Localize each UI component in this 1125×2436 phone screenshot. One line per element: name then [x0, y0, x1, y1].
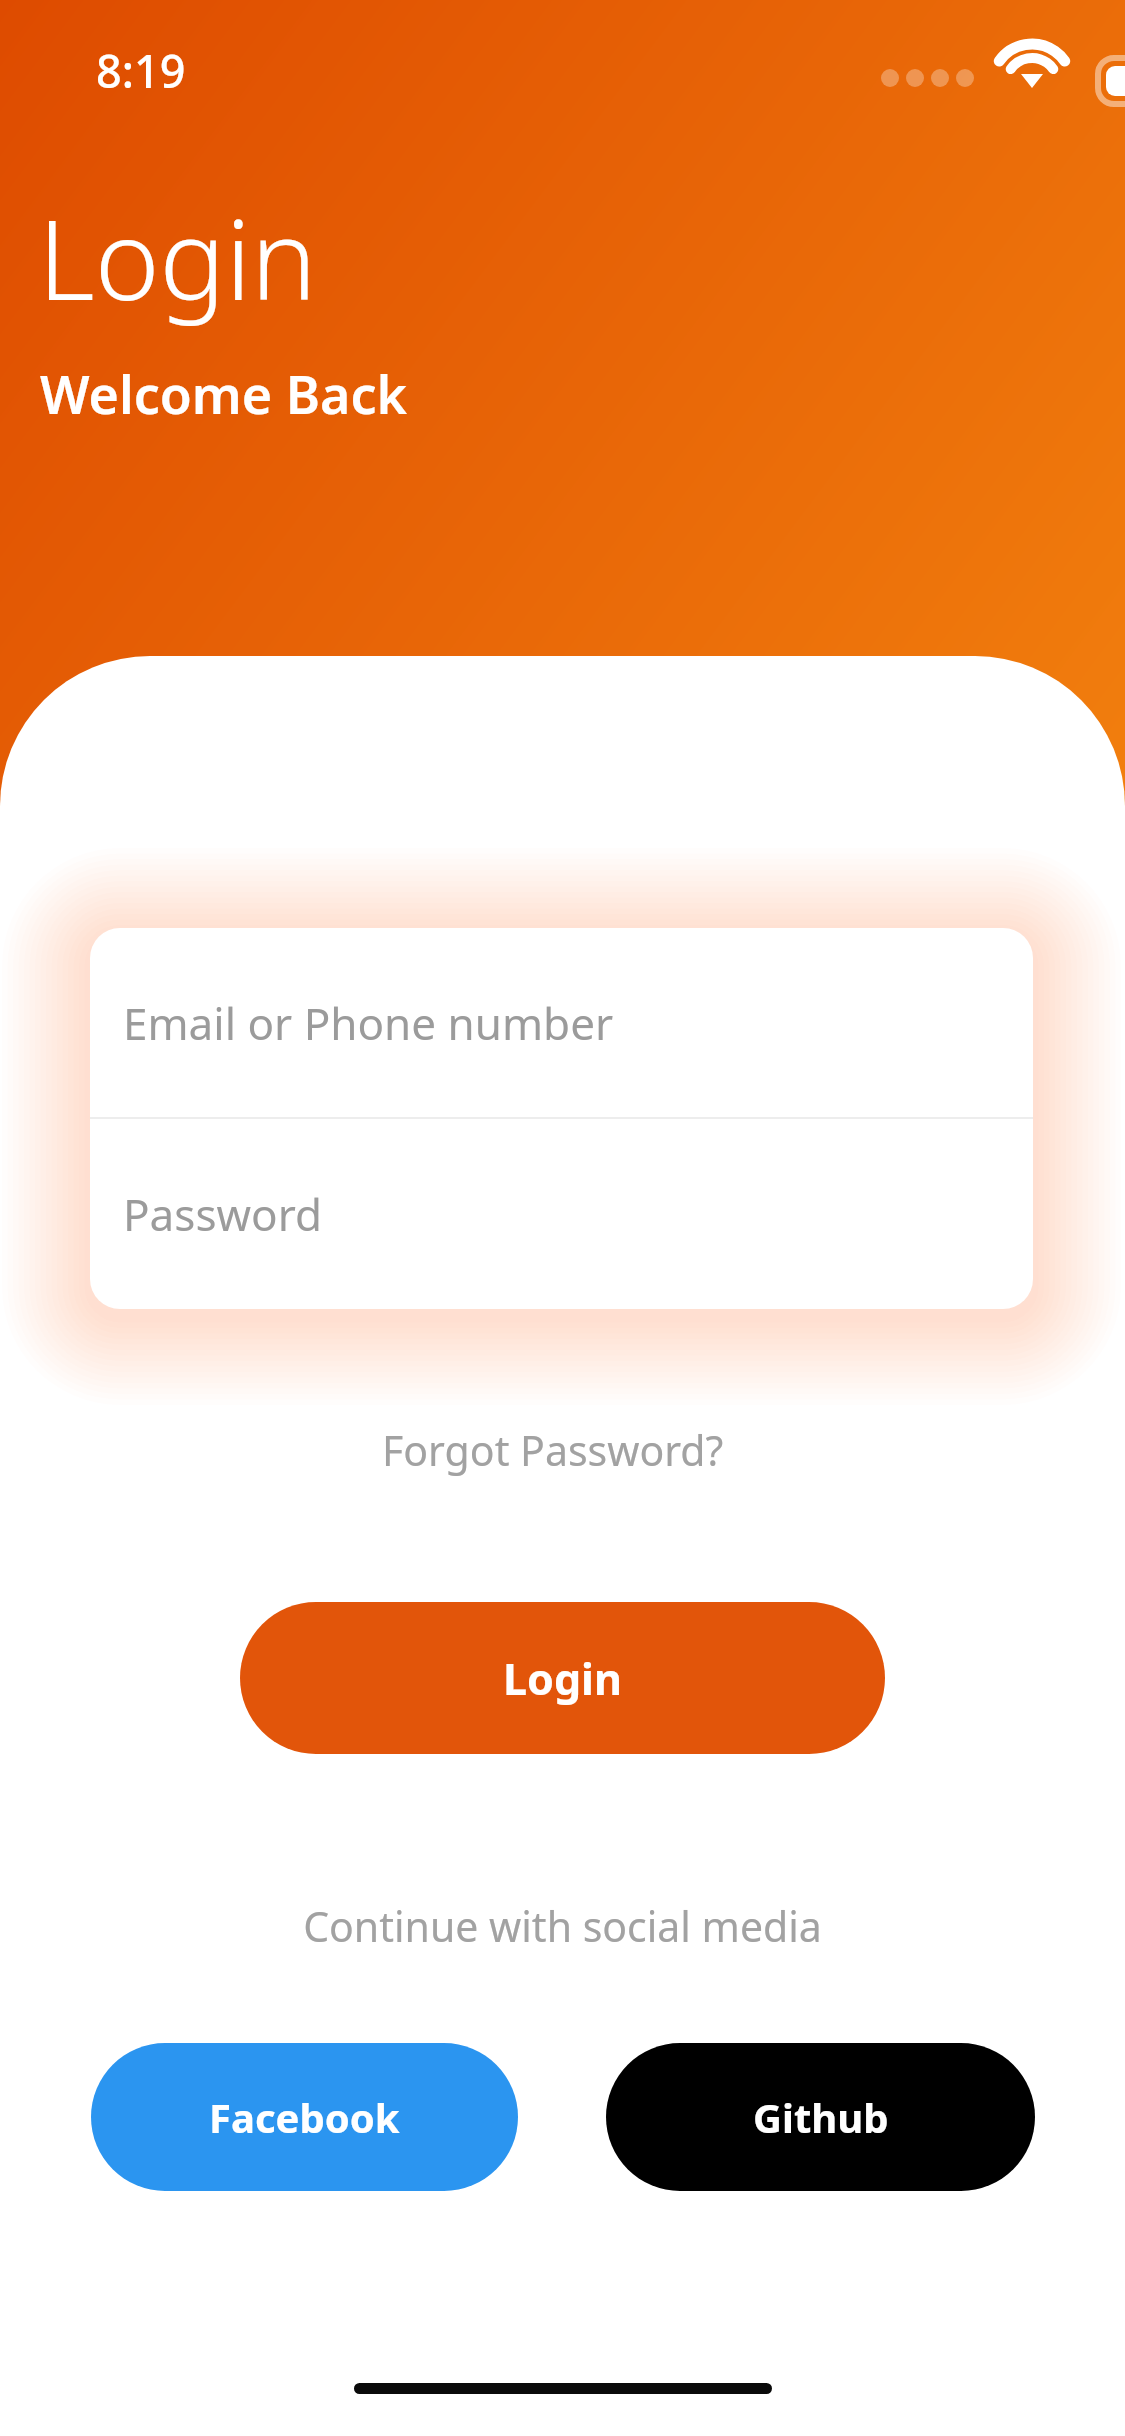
staticText: Github [753, 2090, 889, 2144]
staticText: Welcome Back [40, 358, 408, 429]
staticText: Login [38, 182, 317, 332]
staticText: Password [123, 1184, 323, 1244]
button[interactable]: Github [606, 2043, 1035, 2191]
staticText: Continue with social media [0, 1898, 1125, 1954]
staticText: Email or Phone number [123, 993, 614, 1053]
staticText: Login [503, 1649, 622, 1708]
button[interactable]: Login [240, 1602, 885, 1754]
staticText: 8:19 [96, 40, 186, 101]
staticText: Forgot Password? [382, 1422, 724, 1478]
staticText: Facebook [209, 2090, 400, 2144]
button[interactable]: Facebook [91, 2043, 518, 2191]
button[interactable]: Forgot Password? [352, 1406, 754, 1494]
button[interactable]: Password [90, 1119, 1033, 1309]
button[interactable]: Email or Phone number [90, 928, 1033, 1117]
